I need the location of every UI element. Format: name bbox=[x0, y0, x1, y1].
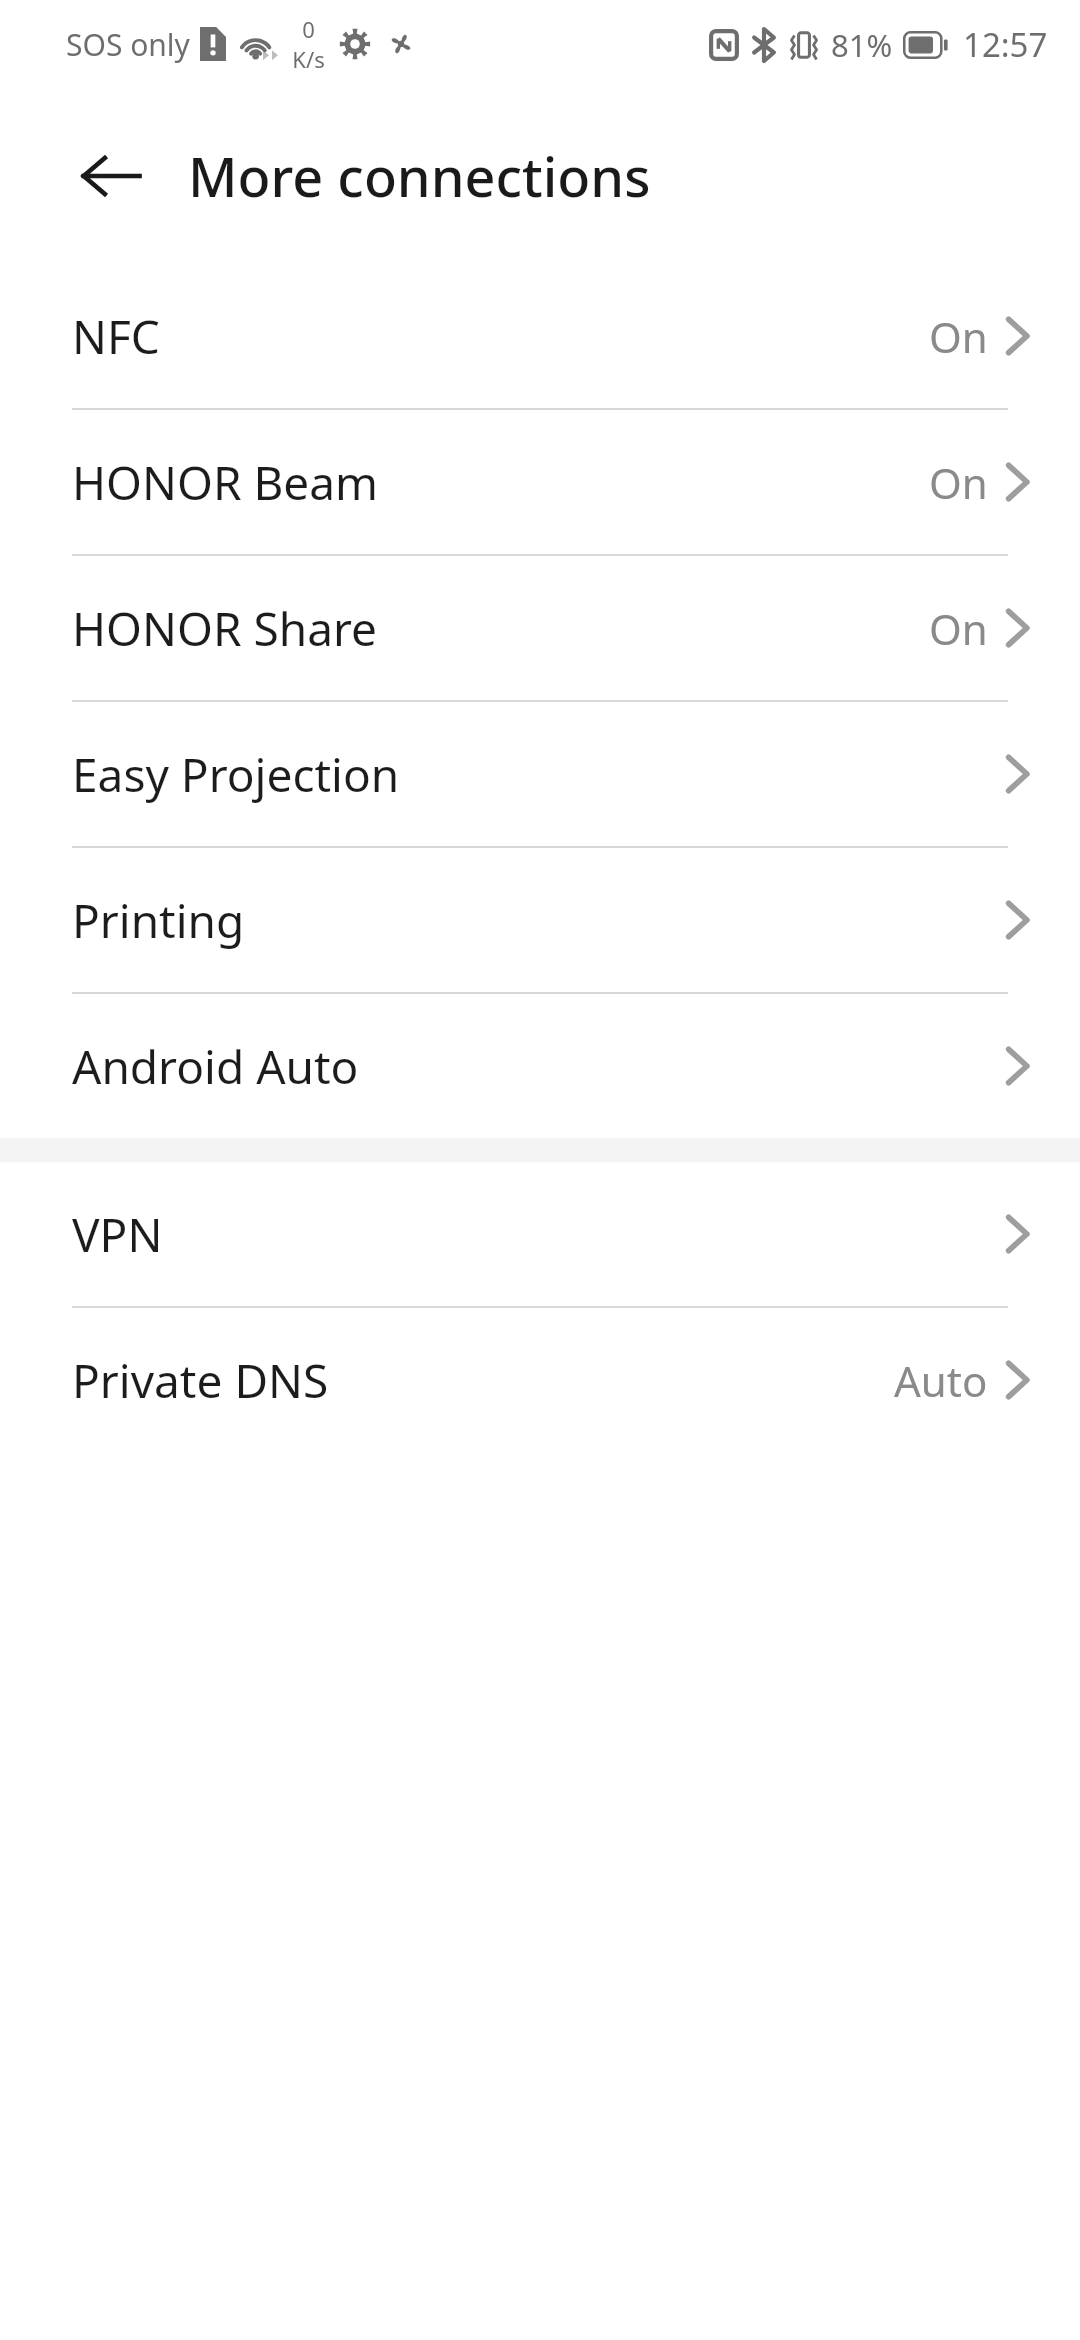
staticText: 0 bbox=[302, 14, 315, 44]
button[interactable]: Android Auto bbox=[0, 994, 1080, 1138]
staticText: 81% bbox=[831, 24, 893, 66]
staticText: Private DNS bbox=[72, 1349, 329, 1412]
button[interactable]: VPN bbox=[0, 1162, 1080, 1306]
staticText: VPN bbox=[72, 1203, 163, 1266]
staticText: More connections bbox=[188, 139, 651, 213]
staticText: K/s bbox=[292, 44, 325, 74]
staticText: On bbox=[929, 454, 988, 511]
button[interactable]: Private DNS bbox=[0, 1308, 1080, 1452]
button[interactable]: Easy Projection bbox=[0, 702, 1080, 846]
staticText: On bbox=[929, 600, 988, 657]
button[interactable]: Printing bbox=[0, 848, 1080, 992]
button[interactable]: NFC bbox=[0, 264, 1080, 408]
staticText: Easy Projection bbox=[72, 743, 400, 806]
staticText: On bbox=[929, 308, 988, 365]
staticText: Printing bbox=[72, 889, 245, 952]
button[interactable]: Back bbox=[56, 121, 166, 231]
staticText: NFC bbox=[72, 305, 160, 368]
staticText: HONOR Beam bbox=[72, 451, 379, 514]
staticText: Auto bbox=[894, 1352, 988, 1409]
button[interactable]: HONOR Beam bbox=[0, 410, 1080, 554]
staticText: SOS only bbox=[66, 24, 190, 65]
staticText: HONOR Share bbox=[72, 597, 377, 660]
staticText: Android Auto bbox=[72, 1035, 359, 1098]
staticText: 12:57 bbox=[963, 22, 1048, 67]
button[interactable]: HONOR Share bbox=[0, 556, 1080, 700]
